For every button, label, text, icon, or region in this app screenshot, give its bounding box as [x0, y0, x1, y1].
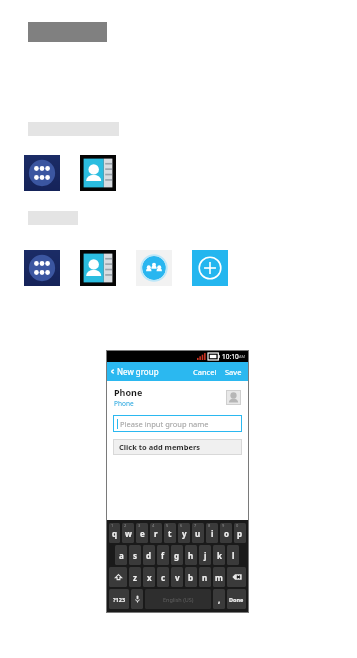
button[interactable]: Back: [109, 364, 160, 379]
button[interactable]: l: [227, 545, 239, 565]
button[interactable]: Add: [192, 250, 228, 286]
button[interactable]: Contacts: [80, 250, 116, 286]
staticText: z: [133, 572, 137, 583]
button[interactable]: f: [157, 545, 169, 565]
staticText: j: [204, 550, 207, 561]
staticText: w: [125, 528, 132, 539]
staticText: y: [182, 528, 187, 539]
staticText: 8: [208, 523, 211, 528]
button[interactable]: Space: [145, 589, 211, 609]
staticText: Phone: [114, 386, 143, 398]
button[interactable]: 7: [192, 523, 204, 543]
button[interactable]: 9: [220, 523, 232, 543]
staticText: 3: [138, 523, 141, 528]
staticText: AM: [239, 354, 246, 359]
staticText: i: [211, 528, 214, 539]
staticText: 6: [180, 523, 183, 528]
button[interactable]: a: [115, 545, 127, 565]
button[interactable]: ?123: [109, 589, 129, 609]
button[interactable]: All apps: [24, 250, 60, 286]
staticText: t: [168, 528, 172, 539]
button[interactable]: 4: [150, 523, 162, 543]
staticText: h: [188, 550, 194, 561]
button[interactable]: Done: [227, 589, 246, 609]
staticText: Done: [229, 596, 244, 603]
button[interactable]: k: [213, 545, 225, 565]
button[interactable]: 1: [109, 523, 120, 543]
button[interactable]: h: [185, 545, 197, 565]
staticText: 9: [222, 523, 225, 528]
button[interactable]: z: [129, 567, 141, 587]
staticText: Click to add members: [119, 442, 201, 452]
button[interactable]: v: [171, 567, 183, 587]
staticText: New group: [117, 366, 159, 377]
staticText: Cancel: [193, 367, 217, 377]
staticText: 0: [236, 523, 239, 528]
staticText: 4: [152, 523, 155, 528]
staticText: f: [161, 550, 165, 561]
button[interactable]: j: [199, 545, 211, 565]
staticText: x: [147, 572, 152, 583]
staticText: u: [195, 528, 201, 539]
staticText: s: [133, 550, 138, 561]
staticText: ?123: [113, 596, 126, 603]
staticText: 1: [111, 523, 114, 528]
staticText: a: [119, 550, 124, 561]
button[interactable]: Shift: [109, 567, 127, 587]
button[interactable]: 6: [178, 523, 190, 543]
button[interactable]: Backspace: [227, 567, 246, 587]
button[interactable]: Cancel: [191, 364, 219, 380]
staticText: d: [146, 550, 152, 561]
button[interactable]: 2: [122, 523, 134, 543]
button[interactable]: n: [199, 567, 211, 587]
staticText: k: [217, 550, 222, 561]
staticText: ,: [218, 594, 221, 605]
button[interactable]: c: [157, 567, 169, 587]
staticText: q: [112, 528, 118, 539]
staticText: 7: [194, 523, 197, 528]
button[interactable]: Click to add members: [113, 439, 242, 455]
staticText: g: [174, 550, 180, 561]
button[interactable]: Please input group name: [113, 415, 242, 432]
staticText: r: [154, 528, 158, 539]
staticText: 10:10: [222, 352, 239, 361]
button[interactable]: Phone: [107, 381, 248, 408]
button[interactable]: Save: [223, 364, 244, 380]
staticText: o: [224, 528, 229, 539]
button[interactable]: s: [129, 545, 141, 565]
staticText: 2: [124, 523, 127, 528]
button[interactable]: 8: [206, 523, 218, 543]
staticText: 5: [166, 523, 169, 528]
staticText: v: [175, 572, 180, 583]
staticText: l: [232, 550, 235, 561]
staticText: Save: [225, 367, 242, 377]
staticText: Please input group name: [120, 419, 209, 429]
staticText: n: [202, 572, 208, 583]
button[interactable]: 3: [136, 523, 148, 543]
staticText: English (US): [163, 596, 194, 603]
button[interactable]: Contacts: [80, 155, 116, 191]
button[interactable]: ,: [213, 589, 225, 609]
button[interactable]: Voice input: [131, 589, 143, 609]
staticText: Phone: [114, 399, 134, 408]
button[interactable]: d: [143, 545, 155, 565]
staticText: p: [237, 528, 243, 539]
button[interactable]: All apps: [24, 155, 60, 191]
button[interactable]: b: [185, 567, 197, 587]
button[interactable]: m: [213, 567, 225, 587]
staticText: m: [215, 572, 223, 583]
button[interactable]: 0: [234, 523, 246, 543]
staticText: e: [140, 528, 145, 539]
staticText: c: [161, 572, 166, 583]
button[interactable]: g: [171, 545, 183, 565]
button[interactable]: 5: [164, 523, 176, 543]
button[interactable]: x: [143, 567, 155, 587]
staticText: b: [188, 572, 194, 583]
button[interactable]: Group: [136, 250, 172, 286]
